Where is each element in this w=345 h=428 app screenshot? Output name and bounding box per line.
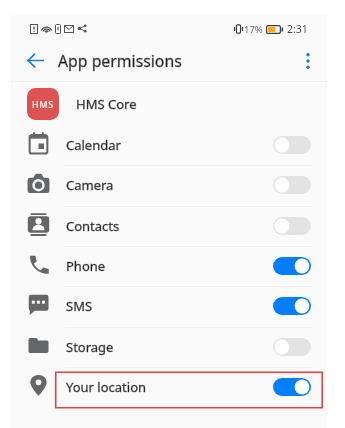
button[interactable]: Permission off xyxy=(273,217,311,235)
staticText: 17% xyxy=(244,23,263,36)
staticText: Calendar xyxy=(66,136,121,154)
staticText: SMS xyxy=(66,297,93,315)
button[interactable]: Permission off xyxy=(273,136,311,154)
button[interactable]: Permission off xyxy=(273,338,311,356)
staticText: HMS Core xyxy=(76,95,137,113)
button[interactable]: Permission on xyxy=(273,257,311,275)
button[interactable]: Calendar xyxy=(11,125,327,165)
staticText: Contacts xyxy=(66,217,120,235)
button[interactable]: Camera xyxy=(11,165,327,205)
staticText: Contacts xyxy=(66,217,120,235)
staticText: Calendar xyxy=(66,136,121,154)
staticText: Your location xyxy=(66,378,147,396)
button[interactable]: Contacts xyxy=(11,206,327,246)
button[interactable]: Permission on xyxy=(273,378,311,396)
staticText: Camera xyxy=(66,176,114,194)
staticText: Camera xyxy=(66,176,114,194)
button[interactable]: Back xyxy=(19,44,52,77)
staticText: Storage xyxy=(66,338,114,356)
button[interactable]: Permission on xyxy=(273,297,311,315)
button[interactable]: Your location xyxy=(11,367,327,407)
staticText: App permissions xyxy=(58,50,182,72)
staticText: Your location xyxy=(66,378,147,396)
staticText: Phone xyxy=(66,257,106,275)
button[interactable]: Permission off xyxy=(273,176,311,194)
staticText: HMS Core xyxy=(76,95,137,113)
staticText: App permissions xyxy=(58,50,182,72)
staticText: HMS xyxy=(32,98,54,110)
button[interactable]: More options xyxy=(291,44,324,77)
staticText: Storage xyxy=(66,338,114,356)
button[interactable]: Storage xyxy=(11,327,327,367)
button[interactable]: Phone xyxy=(11,246,327,286)
button[interactable]: SMS xyxy=(11,286,327,326)
button[interactable]: HMS xyxy=(11,82,327,125)
staticText: SMS xyxy=(66,297,93,315)
staticText: Phone xyxy=(66,257,106,275)
staticText: 2:31 xyxy=(287,22,308,36)
